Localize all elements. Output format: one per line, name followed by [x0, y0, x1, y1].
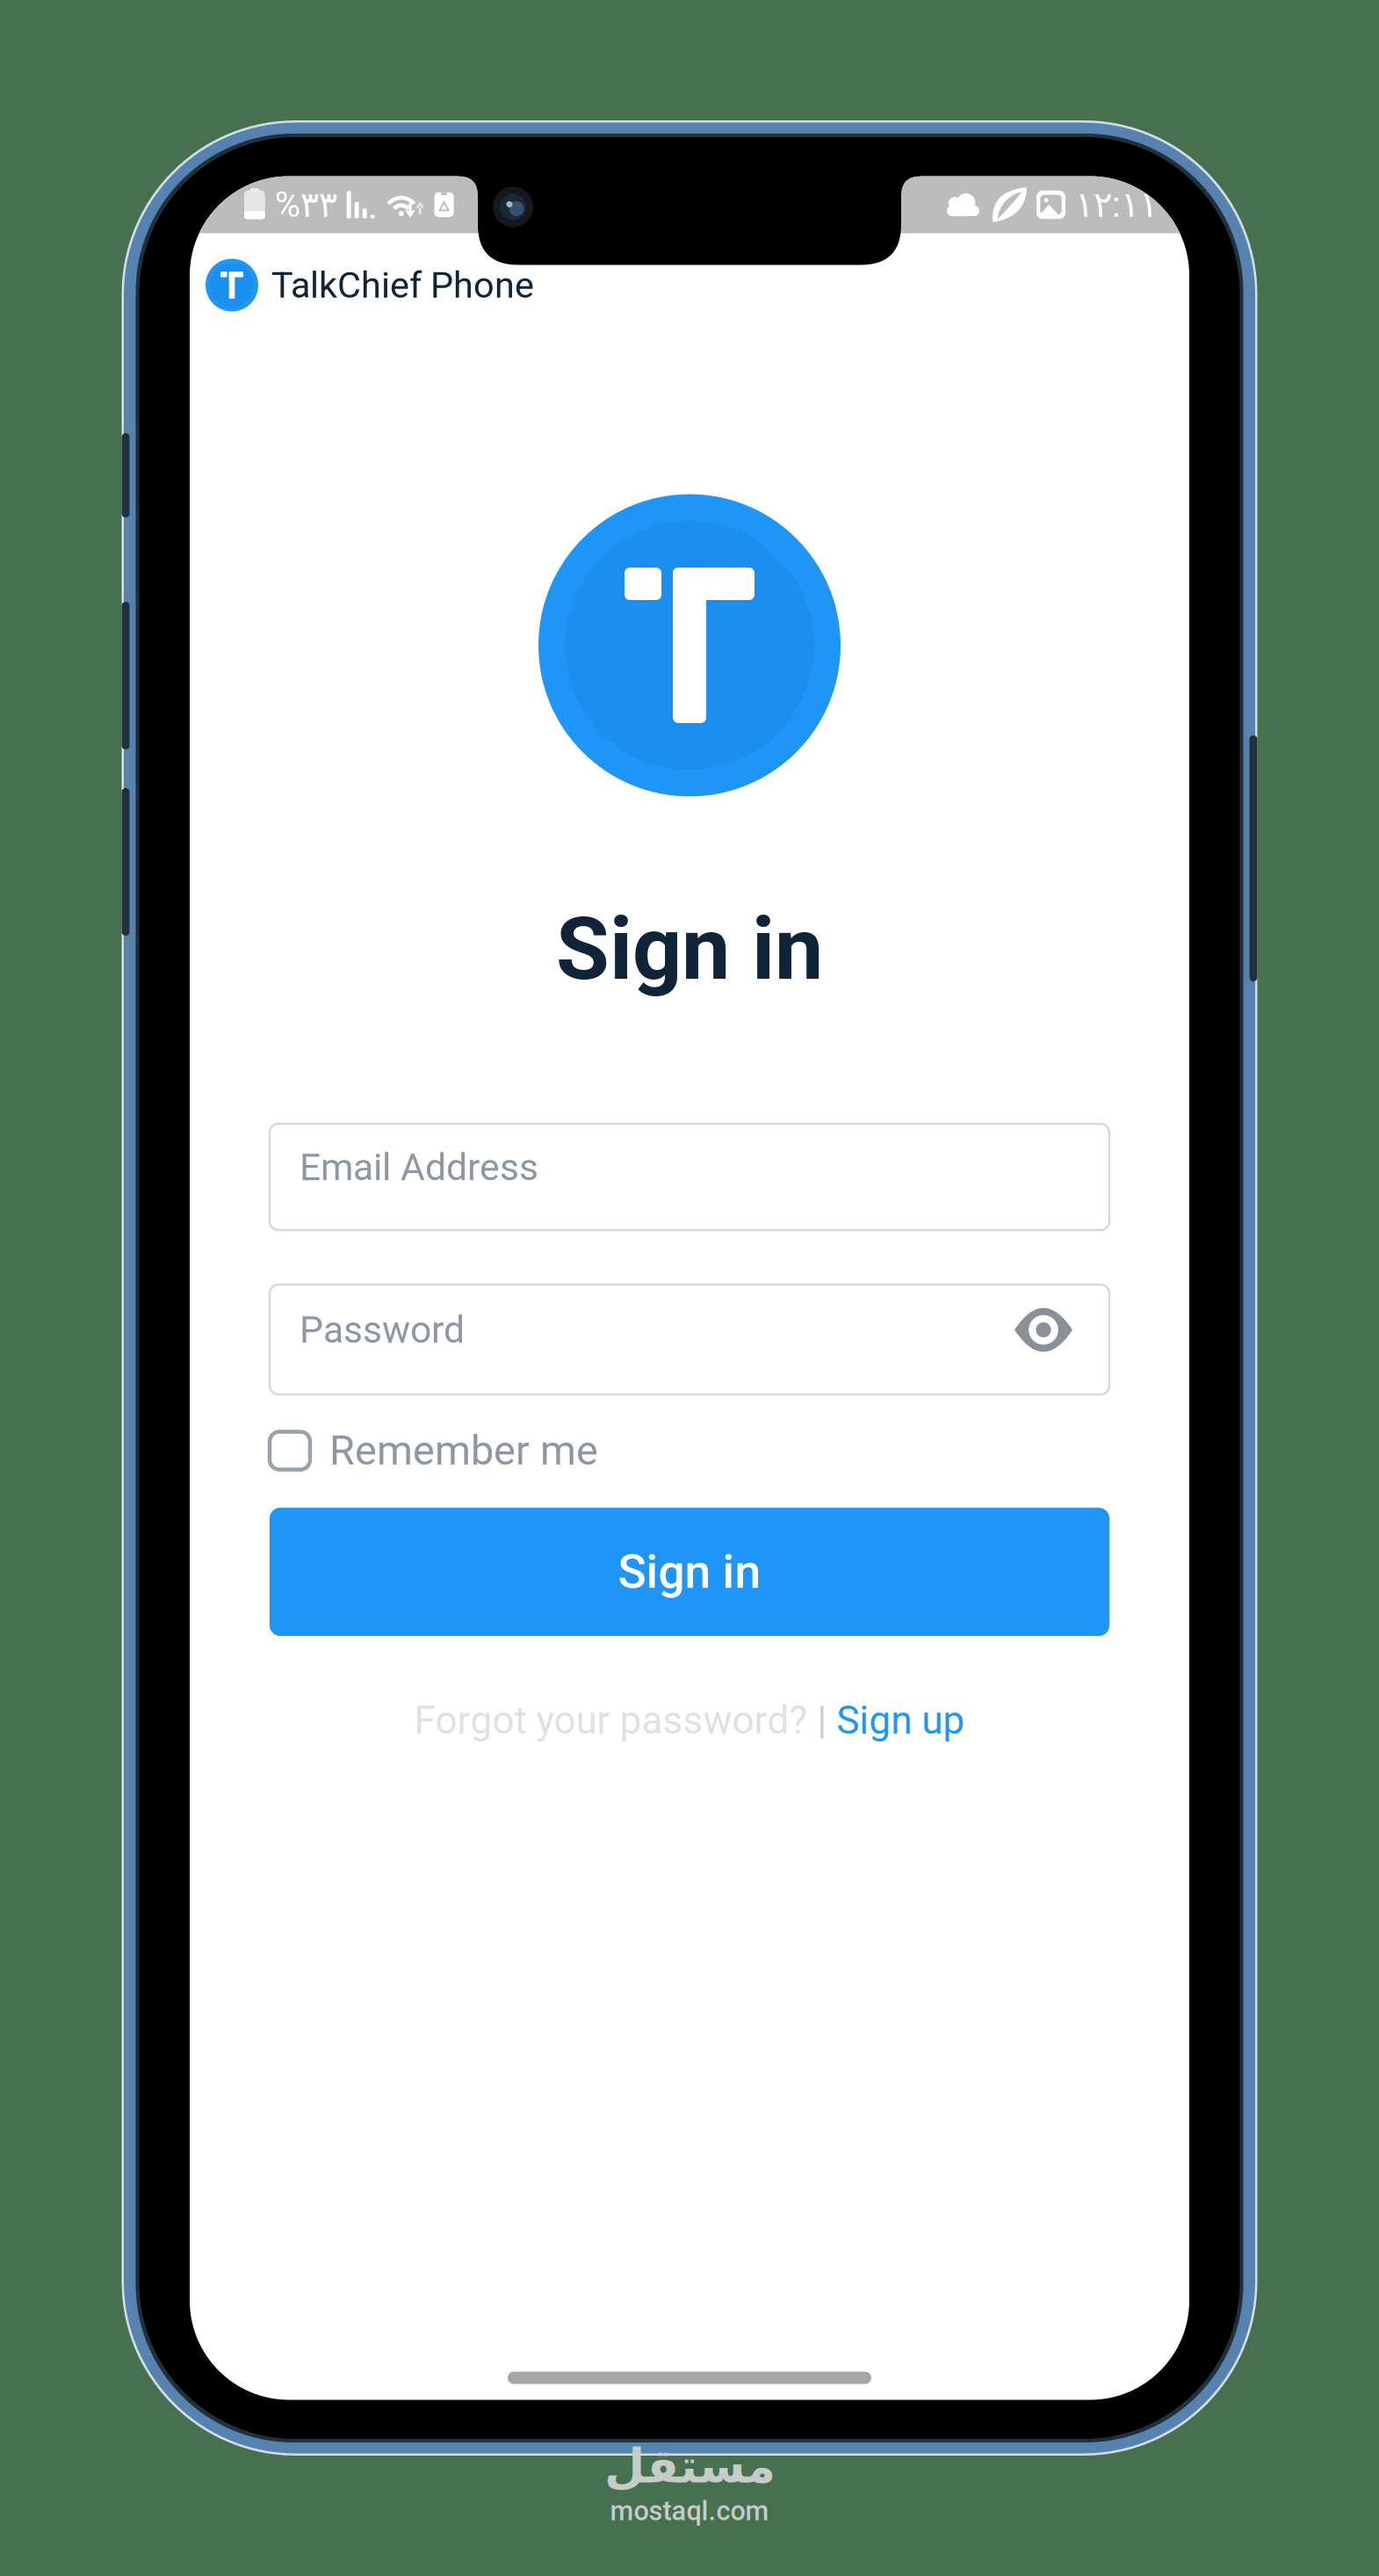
staticText: Password — [300, 1308, 465, 1352]
staticText: TalkChief Phone — [271, 264, 534, 306]
staticText: Sign in — [556, 898, 823, 1000]
staticText: Remember me — [329, 1427, 598, 1475]
staticText: Forgot your password? — [414, 1698, 808, 1743]
staticText: %٣٣ — [275, 184, 337, 225]
button[interactable]: Password — [270, 1285, 1109, 1394]
staticText: Sign up — [837, 1698, 965, 1743]
staticText: mostaql.com — [610, 2495, 769, 2527]
button[interactable]: Email Address — [270, 1124, 1109, 1230]
staticText: | — [808, 1698, 837, 1743]
staticText: Email Address — [300, 1145, 538, 1189]
button[interactable]: Sign in — [270, 1508, 1109, 1636]
staticText: مستقل — [604, 2439, 775, 2494]
staticText: Sign in — [618, 1544, 761, 1599]
button[interactable]: Forgot your password? — [414, 1698, 808, 1743]
staticText: ١٢:١١ — [1075, 184, 1158, 225]
button[interactable]: Sign up — [837, 1698, 965, 1743]
button[interactable]: Remember me — [270, 1430, 1109, 1471]
